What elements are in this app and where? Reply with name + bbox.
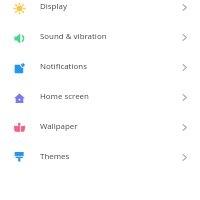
button[interactable]: Home screen <box>0 81 200 111</box>
staticText: Wallpaper <box>40 121 191 132</box>
other: Open Home screen <box>180 93 200 100</box>
staticText: Notifications <box>40 61 191 72</box>
button[interactable]: Notifications <box>0 51 200 81</box>
other: Open Notifications <box>180 63 200 70</box>
staticText: Home screen <box>40 91 191 102</box>
other: Open Themes <box>180 153 200 160</box>
staticText: Display <box>40 1 191 12</box>
other: Open Wallpaper <box>180 123 200 130</box>
button[interactable]: Themes <box>0 141 200 171</box>
staticText: Sound & vibration <box>40 31 191 42</box>
button[interactable]: Display <box>0 0 200 21</box>
staticText: Themes <box>40 151 191 162</box>
button[interactable]: Sound & vibration <box>0 21 200 51</box>
other: Open Sound & vibration <box>180 33 200 40</box>
button[interactable]: Wallpaper <box>0 111 200 141</box>
other: Open Display <box>180 3 200 10</box>
